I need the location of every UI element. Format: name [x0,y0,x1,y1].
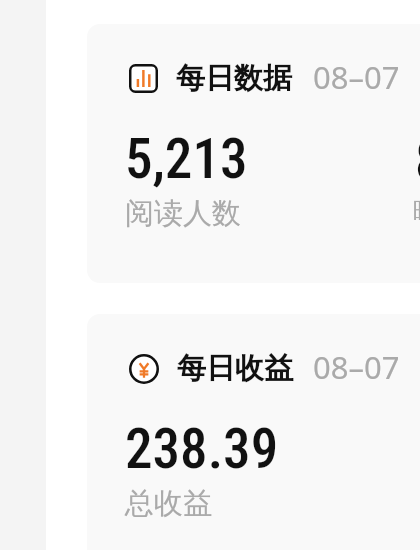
staticText: 08–07 [313,56,400,98]
staticText: 阅读人数 [125,195,241,232]
button[interactable]: Daily data [87,24,420,283]
staticText: 曝光人数 [413,195,420,232]
staticText: 238.39 [125,417,279,481]
staticText: 总收益 [125,485,212,522]
staticText: 08–07 [313,346,400,388]
button[interactable]: Daily income [87,314,420,550]
other: Daily data [129,64,158,93]
other: Daily income [129,354,159,384]
staticText: 5,213 [125,127,248,191]
staticText: 8,126 [415,129,420,193]
staticText: 每日数据 [176,60,292,97]
staticText: 每日收益 [177,350,293,387]
